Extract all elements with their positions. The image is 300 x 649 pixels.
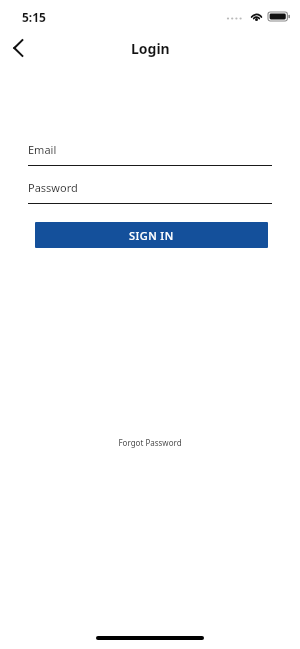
button[interactable]: Back	[0, 32, 36, 64]
staticText: Email	[28, 142, 57, 157]
button[interactable]: SIGN IN	[35, 222, 268, 248]
staticText: Login	[131, 39, 170, 58]
staticText: SIGN IN	[129, 228, 174, 243]
staticText: Password	[28, 180, 78, 195]
button[interactable]: Password	[28, 180, 272, 204]
staticText: 5:15	[22, 9, 46, 25]
button[interactable]: Forgot Password	[108, 434, 192, 451]
button[interactable]: Email	[28, 142, 272, 166]
staticText: Forgot Password	[118, 437, 182, 448]
